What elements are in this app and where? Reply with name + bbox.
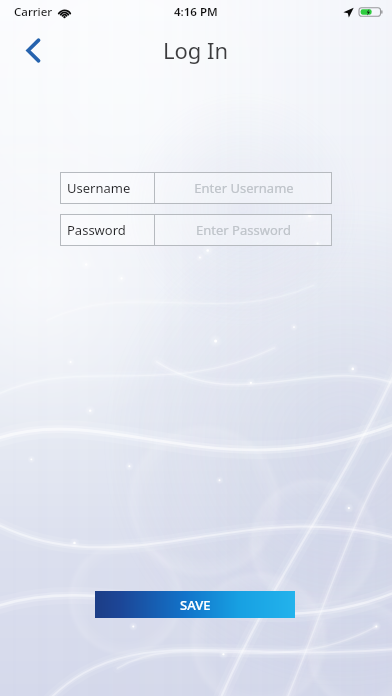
button[interactable]: Back	[11, 28, 55, 72]
staticText: Carrier	[14, 4, 53, 20]
staticText: Enter Password	[196, 221, 291, 239]
staticText: Username	[67, 179, 131, 197]
staticText: Enter Username	[194, 179, 294, 197]
staticText: 4:16 PM	[174, 4, 218, 20]
button[interactable]: Username	[60, 172, 332, 204]
staticText: SAVE	[180, 596, 211, 614]
staticText: Password	[67, 221, 126, 239]
staticText: Log In	[163, 35, 229, 65]
button[interactable]: Password	[60, 214, 332, 246]
button[interactable]: SAVE	[95, 591, 295, 618]
